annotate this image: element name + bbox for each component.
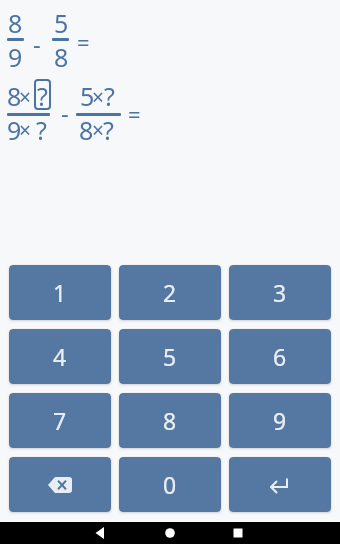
staticText: - — [61, 96, 69, 129]
staticText: - — [33, 27, 41, 60]
button[interactable]: 5 — [119, 329, 221, 384]
button[interactable] — [9, 457, 111, 512]
button[interactable]: 1 — [9, 265, 111, 320]
staticText: 5 — [163, 341, 177, 372]
staticText: 9 — [7, 113, 22, 147]
staticText: 9 — [273, 405, 287, 436]
staticText: 7 — [53, 405, 67, 436]
staticText: 6 — [273, 341, 287, 372]
staticText: 3 — [273, 277, 287, 308]
staticText: 8 — [54, 40, 69, 74]
button[interactable]: 4 — [9, 329, 111, 384]
staticText: = — [128, 99, 141, 129]
staticText: 5 — [54, 6, 69, 40]
staticText: 8 — [163, 405, 177, 436]
staticText: ? — [36, 113, 47, 147]
staticText: 5 — [80, 79, 95, 113]
button[interactable]: 3 — [229, 265, 331, 320]
staticText: 8 — [8, 6, 23, 40]
staticText: ? — [37, 79, 48, 113]
staticText: 8 — [7, 79, 22, 113]
button[interactable]: 7 — [9, 393, 111, 448]
staticText: ? — [104, 79, 115, 113]
staticText: × — [19, 116, 32, 145]
staticText: 2 — [163, 277, 177, 308]
button[interactable]: 9 — [229, 393, 331, 448]
staticText: ? — [103, 113, 114, 147]
staticText: = — [77, 27, 90, 57]
staticText: 4 — [53, 341, 67, 372]
button[interactable]: 0 — [119, 457, 221, 512]
staticText: 9 — [8, 40, 23, 74]
staticText: × — [92, 83, 105, 112]
button[interactable]: 6 — [229, 329, 331, 384]
staticText: 8 — [79, 113, 94, 147]
button[interactable] — [229, 457, 331, 512]
staticText: 1 — [53, 277, 67, 308]
button[interactable]: 2 — [119, 265, 221, 320]
staticText: 0 — [163, 469, 177, 500]
staticText: × — [19, 83, 32, 112]
staticText: × — [92, 116, 105, 145]
button[interactable]: 8 — [119, 393, 221, 448]
